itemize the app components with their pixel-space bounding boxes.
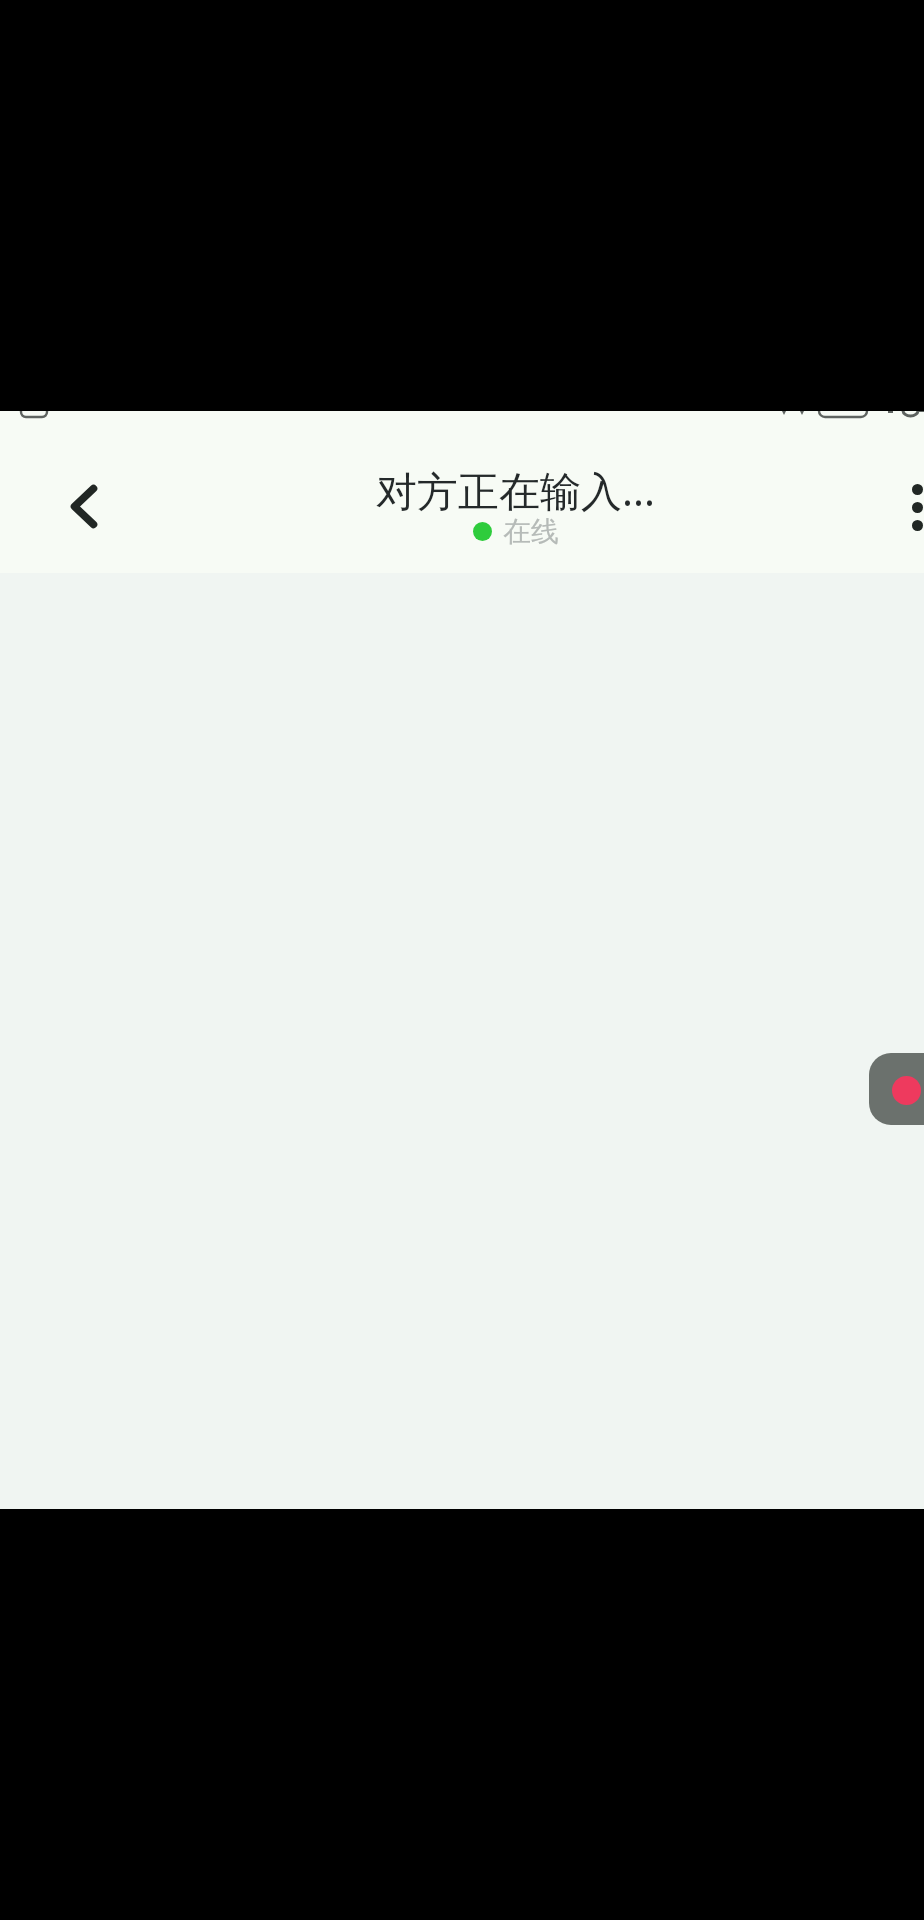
button[interactable]: Record voice message (869, 1053, 924, 1125)
button[interactable]: Back (27, 462, 123, 562)
staticText: 在线 (503, 514, 559, 549)
staticText: 对方正在输入... (376, 462, 655, 518)
button[interactable]: More options (864, 440, 924, 542)
